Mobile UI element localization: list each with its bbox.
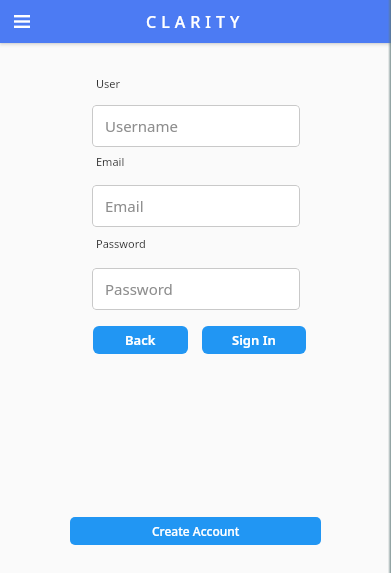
staticText: Sign In (232, 331, 276, 349)
staticText: Password (105, 279, 173, 299)
staticText: Password (96, 236, 146, 251)
staticText: Username (105, 116, 178, 136)
button[interactable]: Create Account (70, 517, 321, 545)
staticText: CLARITY (146, 11, 245, 33)
button[interactable]: Password (92, 268, 300, 310)
button[interactable]: Username (92, 105, 300, 147)
button[interactable]: Sign In (202, 326, 306, 354)
staticText: Create Account (152, 523, 240, 539)
staticText: Email (105, 196, 144, 216)
staticText: Back (125, 331, 156, 349)
button[interactable] (14, 15, 30, 28)
staticText: User (96, 76, 121, 91)
staticText: Email (96, 154, 125, 169)
button[interactable]: Email (92, 185, 300, 227)
button[interactable]: Back (93, 326, 188, 354)
